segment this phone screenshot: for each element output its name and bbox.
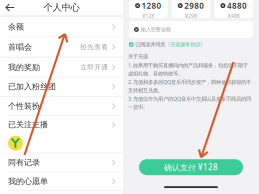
staticText: 一货币。	[128, 104, 148, 110]
staticText: 2. 充值和多多的QQ音乐币同步资产，两种途径获得的不	[128, 78, 251, 86]
button[interactable]: 已关注主播	[0, 116, 123, 134]
staticText: 已阅读并同意	[135, 41, 165, 48]
staticText: 《充值服务协议》	[165, 41, 205, 48]
button[interactable]: 确认支付 ¥128	[139, 159, 243, 175]
button[interactable]: 同有记录	[0, 153, 123, 172]
staticText: ¥298	[185, 12, 197, 19]
button[interactable]: 已阅读并同意	[123, 40, 259, 49]
staticText: 同有记录	[8, 158, 40, 167]
staticText: 确认支付 ¥128	[164, 162, 218, 172]
button[interactable]: 输入您要金额	[123, 21, 259, 38]
staticText: 虚拟礼物、音效特效等。	[128, 70, 183, 77]
button[interactable]: 我的心愿单	[0, 172, 123, 190]
button[interactable]: 个性装扮	[0, 97, 123, 115]
staticText: 关于充值	[128, 53, 148, 60]
staticText: 1280	[142, 0, 162, 11]
staticText: 已关注主播	[8, 120, 48, 130]
staticText: 立即开通	[80, 63, 108, 71]
staticText: 我的心愿单	[8, 176, 48, 186]
staticText: 个性装扮	[8, 101, 40, 111]
staticText: 1. 如果用于购买直播间内的产品和服务，包括但不限于	[128, 62, 248, 69]
button[interactable]: 已加入粉丝团	[0, 77, 123, 96]
button[interactable]: 首唱会	[0, 37, 123, 57]
button[interactable]: 4880	[214, 0, 253, 18]
staticText: 输入您要金额	[141, 26, 171, 33]
staticText: 4880	[227, 0, 247, 11]
staticText: 余额	[8, 22, 24, 32]
staticText: 3. 充值仅作为用户的QQ音乐中交易以及多多币商店的同	[128, 95, 251, 102]
button[interactable]: 返回	[0, 0, 19, 15]
staticText: 已加入粉丝团	[8, 82, 56, 92]
staticText: 我的奖励	[8, 62, 40, 72]
staticText: ¥488	[228, 12, 240, 19]
button[interactable]: 2980	[172, 0, 210, 18]
staticText: 个人中心	[43, 2, 79, 13]
button[interactable]: 1280	[129, 0, 168, 18]
staticText: 抢先查看	[80, 43, 108, 51]
staticText: ¥128	[142, 12, 154, 19]
button[interactable]: 我的奖励	[0, 58, 123, 77]
staticText: 2980	[184, 0, 204, 11]
button[interactable]: 音乐会员	[0, 134, 123, 153]
staticText: 支持相互兑换。	[128, 87, 163, 94]
staticText: 首唱会	[8, 42, 32, 52]
button[interactable]: 余额	[0, 17, 123, 37]
